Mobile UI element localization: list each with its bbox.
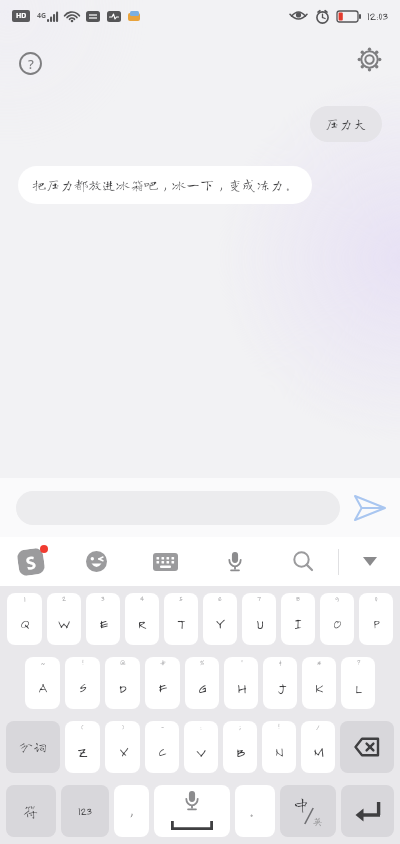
- staticText: 2: [62, 595, 66, 603]
- button[interactable]: 5: [164, 593, 198, 645]
- button[interactable]: 0: [359, 593, 393, 645]
- button[interactable]: 9: [320, 593, 354, 645]
- staticText: P: [373, 614, 379, 632]
- staticText: :: [200, 723, 202, 731]
- button[interactable]: @: [105, 657, 140, 709]
- staticText: Q: [20, 614, 29, 632]
- staticText: X: [119, 742, 127, 760]
- staticText: 123: [78, 805, 92, 818]
- staticText: 9: [335, 595, 339, 603]
- button[interactable]: 4: [125, 593, 159, 645]
- staticText: O: [333, 614, 341, 632]
- staticText: ;: [239, 723, 241, 731]
- staticText: 符: [23, 804, 39, 819]
- button[interactable]: [340, 721, 394, 773]
- button[interactable]: 。: [235, 785, 275, 837]
- staticText: 4G: [37, 11, 47, 21]
- staticText: E: [99, 614, 108, 632]
- staticText: Z: [77, 742, 88, 760]
- staticText: S: [79, 678, 86, 696]
- staticText: ~: [41, 659, 45, 667]
- button[interactable]: 123: [61, 785, 109, 837]
- staticText: 英: [312, 815, 323, 826]
- button[interactable]: ': [224, 657, 258, 709]
- staticText: ': [241, 659, 242, 667]
- staticText: F: [158, 678, 167, 696]
- button[interactable]: ~: [25, 657, 60, 709]
- button[interactable]: [62, 537, 131, 586]
- staticText: 5: [179, 595, 183, 603]
- button[interactable]: !: [262, 721, 296, 773]
- staticText: #: [160, 659, 166, 667]
- button[interactable]: ?: [19, 52, 42, 75]
- button[interactable]: ，: [114, 785, 149, 837]
- button[interactable]: ): [105, 721, 140, 773]
- staticText: L: [355, 678, 362, 696]
- staticText: !: [278, 723, 280, 731]
- button[interactable]: 8: [281, 593, 315, 645]
- button[interactable]: 压力大: [310, 106, 382, 142]
- staticText: 4: [140, 595, 144, 603]
- staticText: ): [122, 723, 124, 731]
- button[interactable]: (: [65, 721, 100, 773]
- button[interactable]: &: [263, 657, 297, 709]
- staticText: 压力大: [325, 117, 367, 131]
- button[interactable]: %: [185, 657, 219, 709]
- staticText: U: [256, 614, 263, 632]
- button[interactable]: [339, 537, 400, 586]
- button[interactable]: [341, 785, 394, 837]
- button[interactable]: 分词: [6, 721, 60, 773]
- staticText: *: [317, 659, 321, 667]
- button[interactable]: [131, 537, 200, 586]
- staticText: ，: [125, 805, 139, 818]
- button[interactable]: S: [0, 537, 62, 586]
- button[interactable]: ?: [341, 657, 375, 709]
- staticText: V: [196, 742, 206, 760]
- button[interactable]: [154, 785, 230, 837]
- button[interactable]: 符: [6, 785, 56, 837]
- staticText: 中: [292, 795, 310, 813]
- staticText: -: [161, 723, 164, 731]
- staticText: 分词: [19, 740, 47, 754]
- staticText: (: [81, 723, 84, 731]
- staticText: S: [24, 550, 38, 575]
- staticText: A: [38, 678, 48, 696]
- staticText: M: [313, 742, 324, 760]
- staticText: 7: [257, 595, 261, 603]
- button[interactable]: *: [302, 657, 336, 709]
- button[interactable]: 7: [242, 593, 276, 645]
- button[interactable]: [269, 537, 338, 586]
- staticText: %: [200, 659, 204, 667]
- button[interactable]: 中: [280, 785, 336, 837]
- button[interactable]: ;: [223, 721, 257, 773]
- button[interactable]: :: [184, 721, 218, 773]
- staticText: 0: [375, 595, 378, 603]
- staticText: T: [177, 614, 185, 632]
- staticText: I: [294, 614, 302, 632]
- button[interactable]: [355, 496, 385, 520]
- staticText: N: [275, 742, 283, 760]
- button[interactable]: !: [65, 657, 100, 709]
- staticText: 1: [24, 595, 26, 603]
- button[interactable]: -: [145, 721, 179, 773]
- button[interactable]: 1: [7, 593, 42, 645]
- staticText: 把压力都放进冰箱吧，冰一下，变成冻力。: [32, 178, 298, 192]
- staticText: @: [120, 659, 126, 667]
- button[interactable]: /: [301, 721, 335, 773]
- staticText: B: [236, 742, 245, 760]
- button[interactable]: 把压力都放进冰箱吧，冰一下，变成冻力。: [18, 166, 312, 204]
- button[interactable]: 6: [203, 593, 237, 645]
- staticText: H: [237, 678, 246, 696]
- button[interactable]: [200, 537, 269, 586]
- button[interactable]: 2: [47, 593, 81, 645]
- staticText: ?: [28, 55, 34, 73]
- button[interactable]: [358, 48, 381, 71]
- staticText: !: [82, 659, 84, 667]
- button[interactable]: 3: [86, 593, 120, 645]
- staticText: 12:03: [367, 9, 388, 23]
- button[interactable]: #: [145, 657, 180, 709]
- staticText: R: [138, 614, 147, 632]
- staticText: D: [119, 678, 126, 696]
- staticText: K: [315, 678, 324, 696]
